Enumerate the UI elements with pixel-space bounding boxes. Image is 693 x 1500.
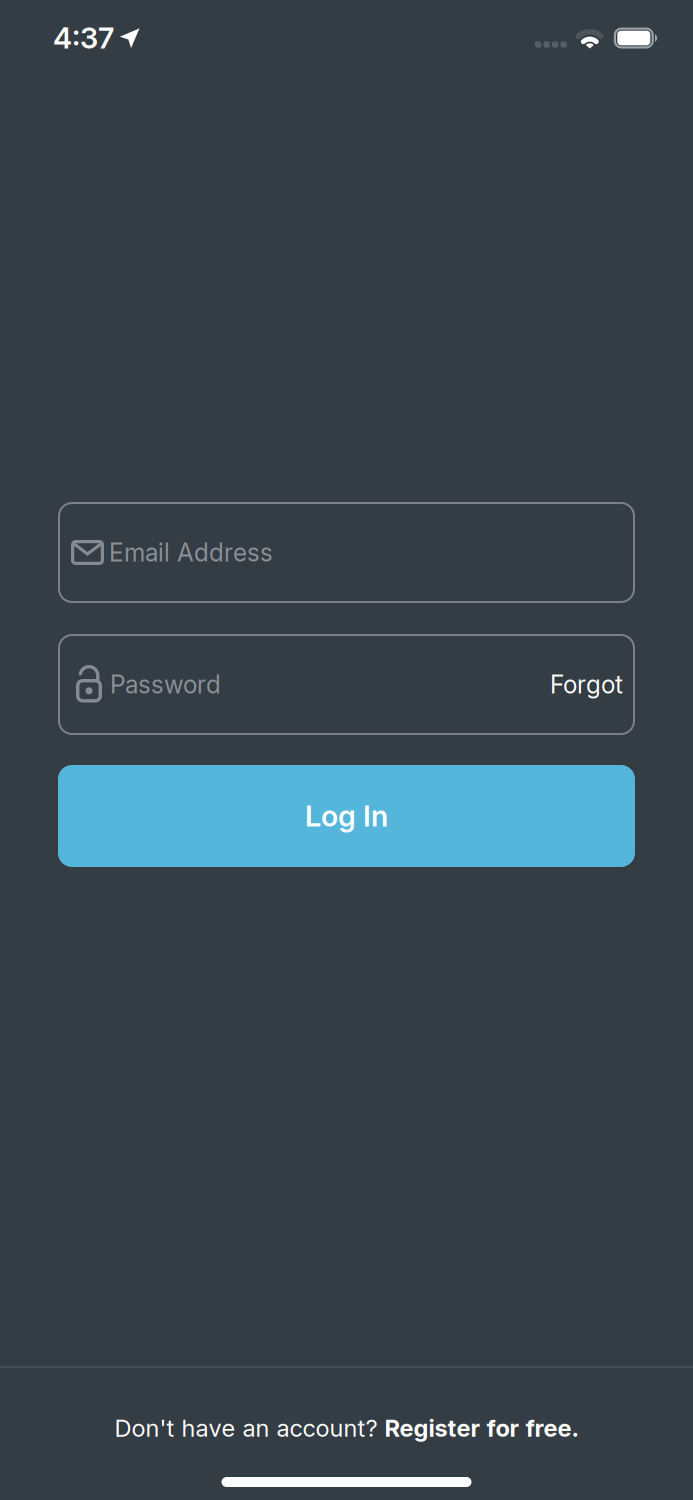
button[interactable]: Log In: [58, 765, 635, 867]
staticText: Log In: [305, 798, 388, 834]
button[interactable]: Email Address: [58, 502, 635, 603]
button[interactable]: Don't have an account? Register for free…: [114, 1414, 578, 1442]
button[interactable]: Password: [58, 634, 635, 735]
staticText: Forgot: [550, 670, 623, 699]
staticText: Password: [110, 670, 221, 699]
staticText: Don't have an account? Register for free…: [114, 1414, 578, 1442]
button[interactable]: Forgot: [550, 670, 623, 699]
staticText: Email Address: [109, 538, 273, 567]
staticText: 4:37: [53, 20, 114, 56]
